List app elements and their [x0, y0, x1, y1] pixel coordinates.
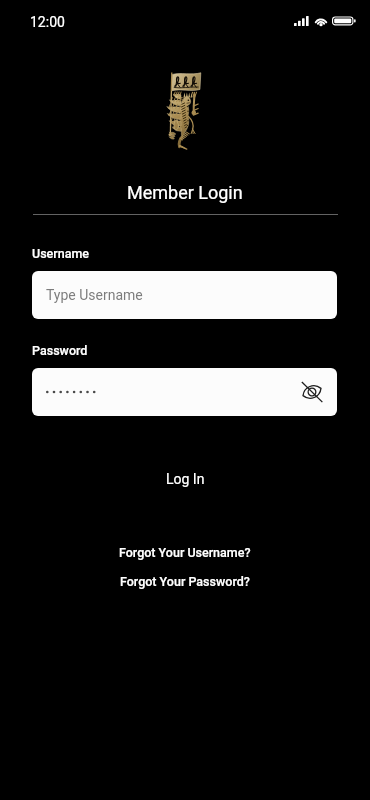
staticText: Forgot Your Username? — [119, 545, 251, 560]
button[interactable]: Log In — [140, 462, 231, 496]
staticText: Log In — [166, 471, 205, 487]
staticText: Password — [32, 343, 88, 358]
button[interactable]: Show password — [32, 368, 337, 416]
other: Battery — [332, 16, 356, 26]
button[interactable]: Username — [32, 246, 90, 261]
button[interactable]: Forgot Your Username? — [111, 542, 259, 563]
other: Cellular signal — [294, 16, 310, 26]
staticText: Username — [32, 246, 90, 261]
button[interactable]: Forgot Your Password? — [112, 571, 258, 592]
staticText: Member Login — [127, 182, 243, 203]
button[interactable]: Password — [32, 343, 88, 358]
staticText: 12:00 — [30, 14, 65, 30]
other: Wi-Fi — [315, 16, 327, 26]
button[interactable]: Show password — [298, 378, 326, 406]
button[interactable]: Type Username — [32, 271, 337, 319]
staticText: Type Username — [46, 287, 143, 303]
staticText: Forgot Your Password? — [120, 574, 250, 589]
